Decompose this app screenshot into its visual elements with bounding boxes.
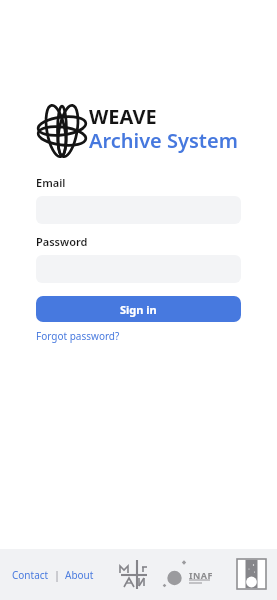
staticText: WEAVE [89, 103, 157, 130]
button[interactable]: About [65, 568, 94, 582]
staticText: Archive System [89, 127, 238, 154]
staticText: Sign in [120, 302, 157, 317]
button[interactable]: Sign in [36, 296, 241, 322]
staticText: | [49, 568, 65, 582]
button[interactable]: Forgot password? [36, 329, 120, 343]
staticText: Email [36, 175, 66, 190]
staticText: INAF [189, 569, 213, 581]
staticText: Password [36, 234, 88, 249]
button[interactable]: Contact [12, 568, 49, 582]
